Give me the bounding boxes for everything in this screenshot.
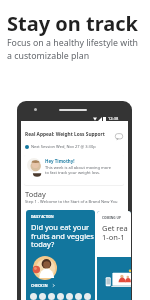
- button[interactable]: [66, 293, 73, 300]
- button[interactable]: [30, 293, 37, 300]
- staticText: Hey Timothy!: [45, 158, 75, 164]
- button[interactable]: [84, 293, 91, 300]
- button[interactable]: [39, 293, 46, 300]
- button[interactable]: COMING UP: [97, 211, 131, 300]
- button[interactable]: [48, 293, 55, 300]
- staticText: Next Session Wed, Nov 27 @ 3:30p: [31, 144, 96, 149]
- button[interactable]: CHECK IN: [31, 283, 56, 288]
- button[interactable]: Messages: [113, 131, 124, 142]
- staticText: DAILY ACTION: [31, 215, 54, 219]
- staticText: Focus on a healthy lifestyle with a cust…: [7, 37, 139, 61]
- staticText: This week is all about moving more to fa…: [45, 165, 112, 175]
- staticText: CHECK IN: [31, 283, 48, 288]
- button[interactable]: [57, 293, 64, 300]
- staticText: Stay on track: [7, 10, 138, 37]
- button[interactable]: Hey Timothy!: [24, 155, 124, 185]
- staticText: 12:38: [108, 116, 119, 121]
- staticText: Get rea 1-on-1: [102, 223, 128, 242]
- staticText: Today: [25, 189, 46, 199]
- button[interactable]: DAILY ACTION: [26, 210, 95, 300]
- staticText: COMING UP: [102, 216, 121, 220]
- staticText: Step 1 - Welcome to the Start of a Brand…: [25, 199, 118, 204]
- button[interactable]: Real Appeal: Weight Loss Support: [25, 131, 105, 138]
- staticText: Did you eat your fruits and veggies toda…: [31, 222, 94, 249]
- button[interactable]: [75, 293, 82, 300]
